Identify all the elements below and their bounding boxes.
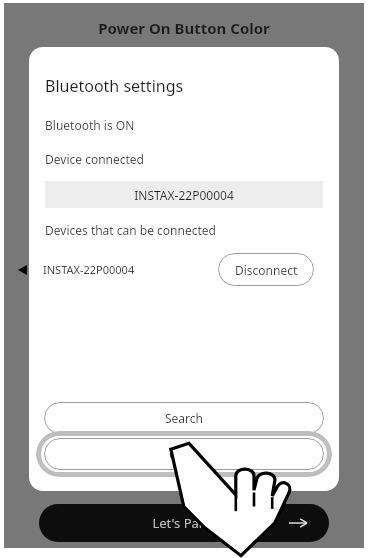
button[interactable]: Previous	[14, 261, 32, 279]
staticText: Power On Button Color	[4, 18, 364, 38]
staticText: Let's Party	[152, 514, 216, 532]
staticText: Bluetooth is ON	[45, 117, 135, 133]
staticText: Close	[169, 446, 200, 462]
staticText: Device connected	[45, 151, 144, 167]
button[interactable]: Search	[44, 402, 324, 434]
button[interactable]: Disconnect	[218, 253, 314, 286]
staticText: Disconnect	[235, 262, 298, 278]
staticText: INSTAX-22P00004	[43, 262, 135, 277]
staticText: INSTAX-22P00004	[134, 187, 234, 203]
staticText: Bluetooth settings	[45, 75, 184, 97]
button[interactable]: Close	[44, 438, 324, 470]
staticText: Search	[165, 410, 203, 426]
button[interactable]: Let's Party	[39, 504, 329, 542]
staticText: Devices that can be connected	[45, 222, 216, 238]
